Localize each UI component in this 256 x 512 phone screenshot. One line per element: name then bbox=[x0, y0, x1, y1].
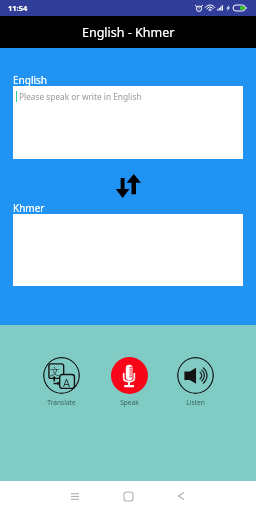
staticText: Please speak or write in English bbox=[19, 91, 142, 102]
staticText: English bbox=[13, 73, 48, 87]
button[interactable]: Listen bbox=[169, 357, 221, 407]
staticText: 文 bbox=[50, 365, 60, 378]
staticText: Khmer bbox=[13, 201, 45, 215]
staticText: Translate bbox=[47, 398, 76, 407]
button[interactable]: Back bbox=[167, 482, 195, 510]
staticText: A bbox=[63, 375, 71, 390]
button[interactable]: Recent apps bbox=[61, 482, 89, 510]
button[interactable]: Home bbox=[114, 482, 142, 510]
staticText: 11:54 bbox=[8, 3, 28, 13]
staticText: Listen bbox=[186, 398, 205, 407]
staticText: Speak bbox=[120, 398, 139, 407]
button[interactable]: Please speak or write in English bbox=[13, 86, 243, 159]
staticText: English - Khmer bbox=[82, 24, 175, 41]
button[interactable]: 文 bbox=[35, 357, 87, 407]
button[interactable]: Speak bbox=[103, 357, 155, 407]
button[interactable]: Swap languages bbox=[116, 174, 141, 198]
